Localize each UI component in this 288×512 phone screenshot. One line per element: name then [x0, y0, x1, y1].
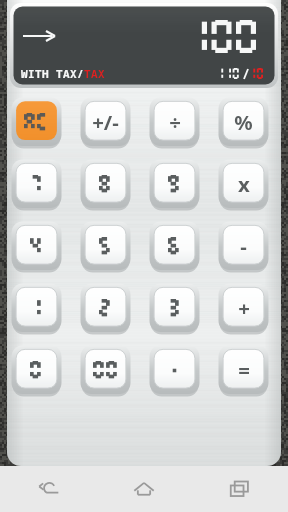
button[interactable] [80, 221, 131, 272]
button[interactable] [149, 159, 200, 210]
button[interactable]: Recent apps [192, 466, 288, 512]
staticText: ÷ [169, 108, 181, 136]
button[interactable]: + [218, 283, 269, 334]
staticText: x [238, 170, 250, 198]
staticText: = [238, 356, 250, 384]
staticText: +/- [92, 108, 119, 136]
staticText: % [234, 108, 253, 136]
staticText: - [240, 232, 247, 260]
button[interactable] [149, 221, 200, 272]
button[interactable] [80, 283, 131, 334]
button[interactable]: Home [96, 466, 192, 512]
button[interactable] [11, 159, 62, 210]
button[interactable] [149, 283, 200, 334]
button[interactable] [80, 159, 131, 210]
button[interactable] [11, 221, 62, 272]
button[interactable] [80, 345, 131, 396]
button[interactable]: Back [0, 466, 96, 512]
button[interactable]: x [218, 159, 269, 210]
staticText: TAX [84, 66, 105, 81]
staticText: + [238, 294, 250, 322]
button[interactable]: % [218, 97, 269, 148]
button[interactable]: +/- [80, 97, 131, 148]
button[interactable]: - [218, 221, 269, 272]
staticText: WITH TAX/ [21, 66, 84, 81]
button[interactable] [11, 345, 62, 396]
button[interactable]: = [218, 345, 269, 396]
button[interactable] [11, 283, 62, 334]
button[interactable] [149, 345, 200, 396]
button[interactable]: ÷ [149, 97, 200, 148]
button[interactable] [11, 97, 62, 148]
